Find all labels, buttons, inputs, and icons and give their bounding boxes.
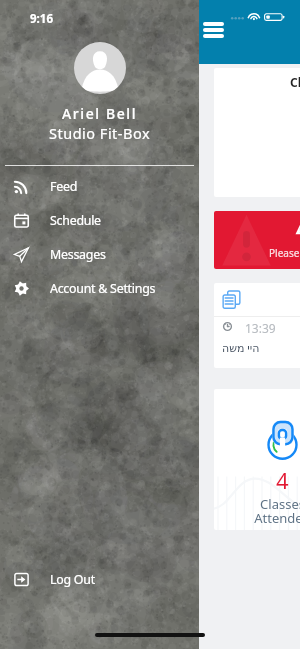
staticText: Messages xyxy=(50,246,106,263)
button[interactable]: Schedule xyxy=(0,203,199,237)
staticText: Ariel Bell xyxy=(62,104,138,123)
staticText: Check In xyxy=(290,74,300,90)
staticText: 9:16 xyxy=(30,11,53,27)
staticText: Studio Fit-Box xyxy=(49,123,151,143)
button[interactable]: 4 xyxy=(214,389,300,530)
button[interactable]: Log Out xyxy=(0,562,199,596)
staticText: היי משה xyxy=(222,340,260,355)
staticText: 4 xyxy=(276,465,289,495)
staticText: Feed xyxy=(50,178,78,195)
button[interactable]: Feed xyxy=(0,169,199,203)
button[interactable]: Check In xyxy=(214,68,300,197)
button[interactable]: 13:39 xyxy=(214,283,300,368)
staticText: 13:39 xyxy=(245,320,276,336)
button[interactable]: Messages xyxy=(0,237,199,271)
button[interactable]: Open navigation menu xyxy=(199,0,236,40)
button[interactable]: Please pay now xyxy=(214,211,300,269)
button[interactable]: Account & Settings xyxy=(0,271,199,305)
staticText: Please pay now xyxy=(269,246,300,260)
staticText: Log Out xyxy=(50,571,95,588)
staticText: Schedule xyxy=(50,212,101,229)
staticText: Account & Settings xyxy=(50,280,156,297)
staticText: Classes Attended xyxy=(254,495,300,527)
